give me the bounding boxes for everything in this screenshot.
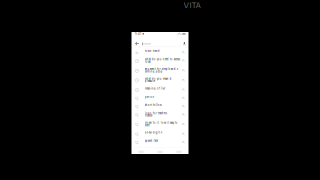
button[interactable]: speech talk (131, 139, 188, 147)
button[interactable]: a new digit n (131, 131, 188, 139)
button[interactable]: Voice search (183, 41, 186, 46)
staticText: treated (145, 114, 153, 117)
staticText: town trend (145, 49, 160, 53)
staticText: genius (145, 95, 154, 98)
staticText: what do you mean b (145, 77, 172, 80)
staticText: meaning of live (145, 87, 165, 90)
staticText: VITA (183, 1, 201, 10)
staticText: logo for teachers (145, 112, 167, 115)
button[interactable]: Tool 2 (150, 148, 169, 156)
staticText: closer to it. love it easy to (145, 121, 178, 124)
button[interactable]: closer to it. love it easy to (131, 121, 188, 131)
button[interactable]: any event for simple and s (131, 67, 188, 77)
button[interactable]: what do you mean b (131, 77, 188, 87)
staticText: smiling peop (145, 70, 163, 73)
staticText: 9:41 (135, 32, 142, 36)
staticText: what do you need to access (145, 58, 180, 61)
button[interactable]: what do you need to access (131, 58, 188, 67)
button[interactable]: meaning of live (131, 87, 188, 95)
button[interactable]: town trend (131, 49, 188, 58)
button[interactable]: logo for teachers (131, 112, 188, 121)
staticText: short follow (145, 103, 162, 107)
button[interactable]: short follow (131, 103, 188, 112)
staticText: start (145, 124, 150, 127)
staticText: any event for simple and s (145, 67, 178, 71)
staticText: pleasure (145, 80, 155, 83)
button[interactable]: Tool 3 (169, 148, 188, 156)
button[interactable]: Back (135, 41, 139, 46)
button[interactable]: genius (131, 95, 188, 103)
staticText: a new digit n (145, 131, 163, 134)
button[interactable]: Tool 1 (131, 148, 150, 156)
staticText: speech talk (145, 139, 158, 142)
staticText: local (145, 60, 151, 63)
